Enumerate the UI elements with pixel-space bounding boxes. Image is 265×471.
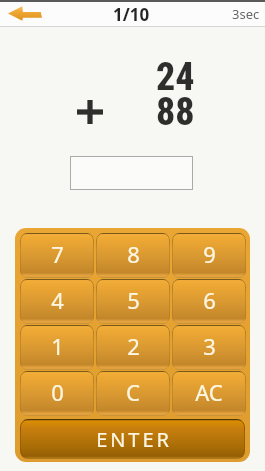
button[interactable]: 7: [20, 233, 94, 278]
button[interactable]: 5: [96, 279, 170, 324]
staticText: 88: [156, 90, 195, 132]
button[interactable]: 1: [20, 325, 94, 370]
staticText: 6: [203, 285, 216, 315]
staticText: 1: [51, 331, 64, 361]
button[interactable]: C: [96, 371, 170, 416]
button[interactable]: ENTER: [20, 419, 245, 459]
button[interactable]: 9: [172, 233, 246, 278]
button[interactable]: Back: [8, 6, 42, 21]
staticText: 2: [127, 331, 140, 361]
button[interactable]: 8: [96, 233, 170, 278]
button[interactable]: 0: [20, 371, 94, 416]
button[interactable]: AC: [172, 371, 246, 416]
staticText: 24: [156, 55, 195, 97]
button[interactable]: 2: [96, 325, 170, 370]
staticText: 3sec: [232, 5, 260, 23]
staticText: C: [126, 377, 140, 407]
staticText: 4: [51, 285, 64, 315]
staticText: 3: [203, 331, 216, 361]
staticText: 7: [51, 239, 64, 269]
staticText: 9: [203, 239, 216, 269]
staticText: 0: [51, 377, 64, 407]
button[interactable]: 4: [20, 279, 94, 324]
staticText: 5: [127, 285, 140, 315]
staticText: 1/10: [113, 3, 150, 26]
button[interactable]: 3: [172, 325, 246, 370]
staticText: AC: [195, 377, 223, 407]
staticText: 8: [127, 239, 140, 269]
button[interactable]: 6: [172, 279, 246, 324]
staticText: ENTER: [96, 426, 172, 453]
